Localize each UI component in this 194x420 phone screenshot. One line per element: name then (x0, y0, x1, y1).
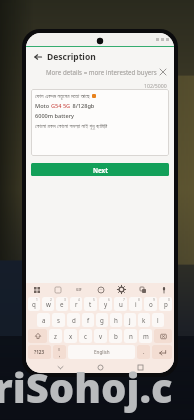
button[interactable]: English (68, 345, 135, 359)
button[interactable]: h (110, 313, 122, 327)
button[interactable]: o (144, 297, 157, 311)
staticText: a (42, 316, 46, 324)
staticText: 0 (58, 347, 61, 352)
staticText: t (89, 300, 92, 308)
staticText: Next (93, 166, 108, 174)
staticText: . (143, 349, 145, 356)
button[interactable]: Comma (53, 345, 66, 359)
button[interactable]: u (114, 297, 127, 311)
staticText: b (114, 332, 118, 340)
button[interactable]: Voice input (158, 284, 169, 295)
button[interactable]: t (84, 297, 97, 311)
staticText: v (99, 332, 103, 340)
staticText: কোনো রকম কোনো সমস্যা নাই শুধু ব্যাটারি (35, 122, 108, 130)
staticText: , (59, 352, 61, 358)
button[interactable]: Settings (116, 284, 127, 295)
button[interactable]: q (28, 297, 40, 311)
staticText: z (54, 332, 57, 340)
staticText: c (84, 332, 87, 340)
button[interactable]: Enter (152, 345, 172, 359)
button[interactable]: n (124, 329, 137, 343)
staticText: d (72, 316, 76, 324)
button[interactable]: w (42, 297, 54, 311)
staticText: u (119, 300, 123, 308)
button[interactable]: ফোন একদম নতুনের মতো আছে (31, 89, 169, 156)
button[interactable]: Backspace (154, 329, 172, 343)
staticText: 2 (50, 298, 52, 302)
button[interactable]: Home (94, 361, 106, 373)
button[interactable]: Stickers (52, 284, 63, 295)
button[interactable]: Shift (28, 329, 47, 343)
staticText: ?123 (34, 349, 45, 355)
staticText: 4 (78, 298, 80, 302)
staticText: 7 (123, 298, 125, 302)
staticText: riSohoj.c (0, 360, 173, 414)
button[interactable]: k (138, 313, 150, 327)
button[interactable]: i (129, 297, 142, 311)
staticText: l (157, 316, 159, 324)
button[interactable]: ?123 (28, 345, 51, 359)
button[interactable]: e (56, 297, 68, 311)
button[interactable]: j (124, 313, 136, 327)
staticText: 5 (93, 298, 95, 302)
staticText: 6000m battery (35, 112, 75, 120)
staticText: GIF (76, 287, 82, 292)
button[interactable]: f (82, 313, 94, 327)
button[interactable]: Translate (137, 284, 148, 295)
button[interactable]: Back (32, 51, 44, 63)
staticText: ফোন একদম নতুনের মতো আছে (35, 92, 90, 100)
button[interactable]: m (139, 329, 152, 343)
button[interactable]: Period (137, 345, 150, 359)
button[interactable]: d (67, 313, 80, 327)
staticText: g (100, 316, 104, 324)
button[interactable]: GIF (73, 284, 84, 295)
staticText: 6 (108, 298, 110, 302)
button[interactable]: Next (31, 163, 169, 176)
button[interactable]: c (79, 329, 92, 343)
staticText: Moto (35, 102, 51, 110)
staticText: G54 5G (51, 102, 71, 110)
staticText: 3 (64, 298, 66, 302)
staticText: 8 (138, 298, 140, 302)
button[interactable]: z (49, 329, 62, 343)
staticText: q (32, 300, 36, 308)
staticText: s (57, 316, 60, 324)
button[interactable]: y (99, 297, 112, 311)
button[interactable]: g (96, 313, 108, 327)
staticText: 9 (153, 298, 155, 302)
staticText: h (114, 316, 118, 324)
button[interactable]: b (109, 329, 122, 343)
staticText: i (135, 300, 137, 308)
button[interactable]: v (94, 329, 107, 343)
staticText: m (143, 332, 149, 340)
staticText: r (75, 300, 78, 308)
button[interactable]: l (152, 313, 164, 327)
staticText: o (149, 300, 153, 308)
staticText: w (46, 300, 51, 308)
staticText: x (69, 332, 73, 340)
button[interactable]: Close (157, 66, 168, 77)
button[interactable]: s (52, 313, 65, 327)
button[interactable]: r (70, 297, 82, 311)
staticText: 8/128gb (71, 102, 95, 110)
staticText: y (104, 300, 108, 308)
staticText: p (164, 300, 168, 308)
staticText: Description (47, 51, 96, 63)
staticText: f (87, 316, 90, 324)
button[interactable]: p (159, 297, 172, 311)
staticText: j (129, 316, 131, 324)
button[interactable]: a (37, 313, 50, 327)
staticText: k (142, 316, 146, 324)
staticText: 0 (168, 298, 170, 302)
staticText: n (129, 332, 133, 340)
button[interactable]: Recents (134, 361, 146, 373)
staticText: 102/5000 (144, 82, 167, 89)
button[interactable]: Keyboard modes (31, 284, 42, 295)
button[interactable]: x (64, 329, 77, 343)
button[interactable]: Hide keyboard (54, 361, 66, 373)
staticText: English (94, 349, 110, 355)
button[interactable]: Emoji (95, 284, 106, 295)
staticText: 1 (36, 298, 38, 302)
staticText: More details = more interested buyers (46, 68, 157, 76)
staticText: e (60, 300, 64, 308)
